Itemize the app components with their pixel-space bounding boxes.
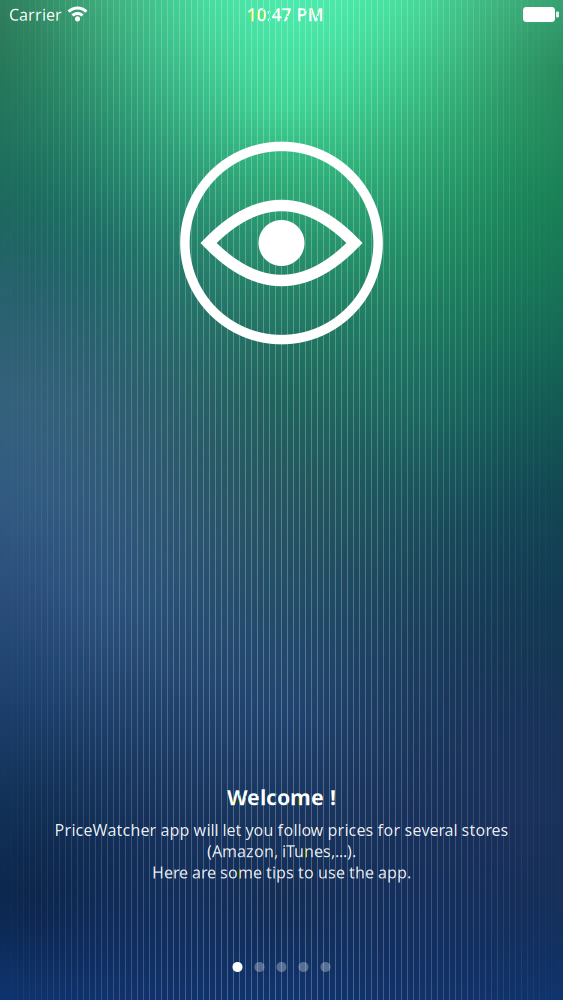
staticText: Carrier	[9, 4, 62, 25]
button[interactable]: Page 3	[276, 962, 286, 972]
staticText: 10:47 PM	[246, 3, 323, 26]
staticText: Here are some tips to use the app.	[152, 862, 411, 883]
button[interactable]: Page 1	[232, 962, 242, 972]
button[interactable]: Page 4	[298, 962, 308, 972]
staticText: (Amazon, iTunes,...).	[207, 840, 356, 862]
staticText: PriceWatcher app will let you follow pri…	[54, 819, 508, 840]
button[interactable]: Page 5	[320, 962, 330, 972]
staticText: Welcome !	[227, 783, 336, 811]
button[interactable]: Page 2	[254, 962, 264, 972]
